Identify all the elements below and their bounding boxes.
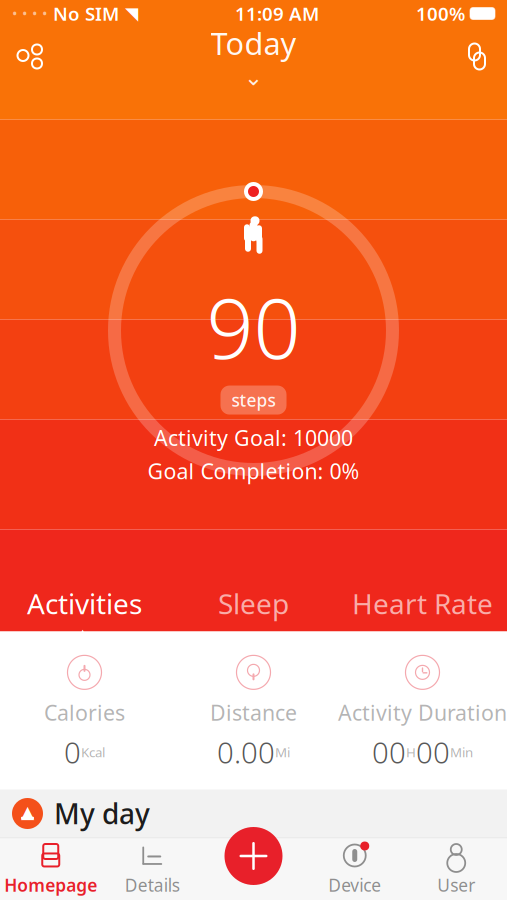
staticText: 00 — [416, 733, 450, 772]
staticText: No SIM — [48, 1, 119, 26]
button[interactable]: ▲ — [0, 789, 507, 837]
button[interactable]: Activities — [0, 585, 169, 622]
staticText: Activities — [27, 585, 142, 622]
staticText: Device — [328, 873, 381, 896]
button[interactable]: Add — [224, 827, 282, 885]
staticText: My day — [54, 795, 150, 832]
staticText: steps — [231, 389, 275, 412]
button[interactable]: User — [405, 838, 507, 900]
staticText: Today — [210, 23, 296, 63]
staticText: ◥ — [119, 4, 138, 23]
staticText: • • • • — [12, 4, 48, 23]
staticText: ⌄ — [244, 64, 263, 90]
staticText: ▲ — [21, 802, 34, 822]
button[interactable]: Connect device — [455, 34, 499, 78]
staticText: Kcal — [81, 743, 105, 761]
staticText: 0 — [64, 733, 81, 772]
staticText: 100% — [416, 1, 465, 26]
button[interactable]: Share — [8, 34, 52, 78]
button[interactable]: Activity Duration — [338, 655, 507, 772]
staticText: Details — [125, 873, 180, 896]
staticText: Homepage — [4, 873, 97, 896]
staticText: ▲ — [74, 623, 91, 649]
button[interactable]: Homepage — [0, 838, 101, 900]
staticText: Activity Duration — [338, 698, 507, 727]
button[interactable]: Sleep — [169, 585, 338, 622]
staticText: Sleep — [218, 585, 289, 622]
button[interactable]: Heart Rate — [338, 585, 507, 622]
staticText: Distance — [210, 698, 297, 727]
staticText: Heart Rate — [352, 585, 493, 622]
staticText: User — [437, 873, 475, 896]
button[interactable]: Device — [304, 838, 405, 900]
staticText: Min — [450, 743, 473, 761]
button[interactable]: Calories — [0, 655, 169, 772]
staticText: 00 — [372, 733, 406, 772]
staticText: Activity Goal: 10000 — [154, 424, 353, 452]
staticText: Goal Completion: 0% — [147, 457, 359, 485]
staticText: Calories — [44, 698, 125, 727]
staticText: H — [406, 743, 416, 761]
staticText: 11:09 AM — [235, 1, 319, 26]
staticText: 0.00 — [217, 733, 275, 772]
button[interactable]: Distance — [169, 655, 338, 772]
staticText: 90 — [206, 272, 300, 382]
staticText: Mi — [275, 743, 290, 761]
button[interactable]: Details — [101, 838, 203, 900]
